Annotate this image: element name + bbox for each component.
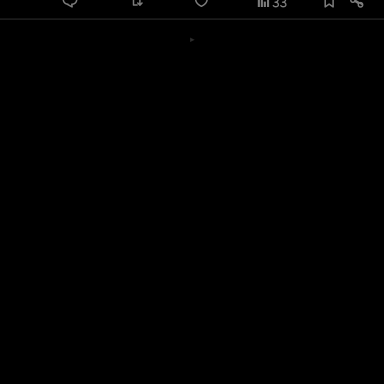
button[interactable]: Share [349,0,364,10]
button[interactable]: 33 views [273,0,287,7]
button[interactable]: Bookmark [324,0,334,8]
button[interactable]: Repost [131,0,143,6]
button[interactable]: Like [195,0,208,8]
button[interactable]: Views [258,0,270,7]
button[interactable]: Reply [62,0,77,9]
